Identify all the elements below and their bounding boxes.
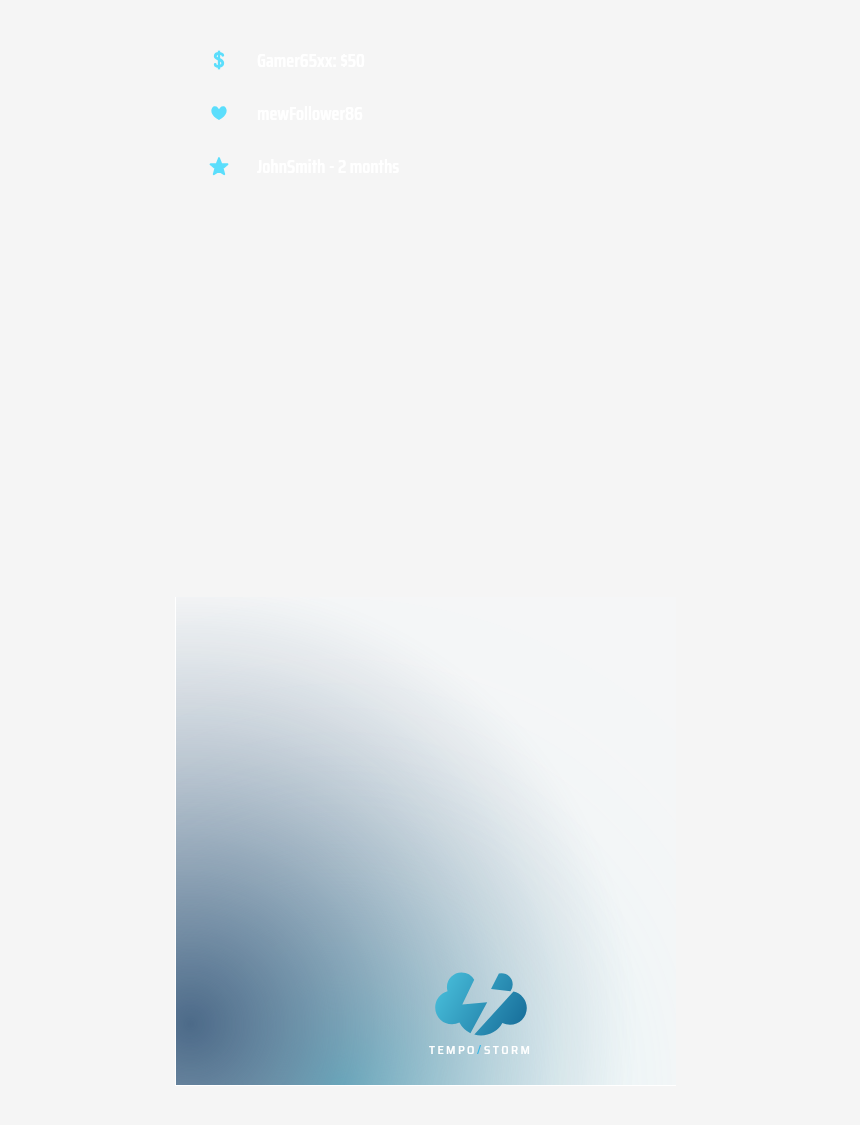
staticText: TEMPO: [429, 1040, 477, 1059]
staticText: STORM: [484, 1040, 533, 1059]
staticText: mewFollower86: [257, 99, 363, 128]
staticText: /: [477, 1040, 484, 1059]
staticText: JohnSmith - 2 months: [257, 152, 400, 181]
button[interactable]: JohnSmith - 2 months: [203, 150, 400, 182]
staticText: Gamer65xx: $50: [257, 46, 365, 75]
button[interactable]: mewFollower86: [203, 97, 363, 129]
button[interactable]: Gamer65xx: $50: [203, 44, 365, 76]
other: Tempo Storm: [429, 1040, 533, 1059]
